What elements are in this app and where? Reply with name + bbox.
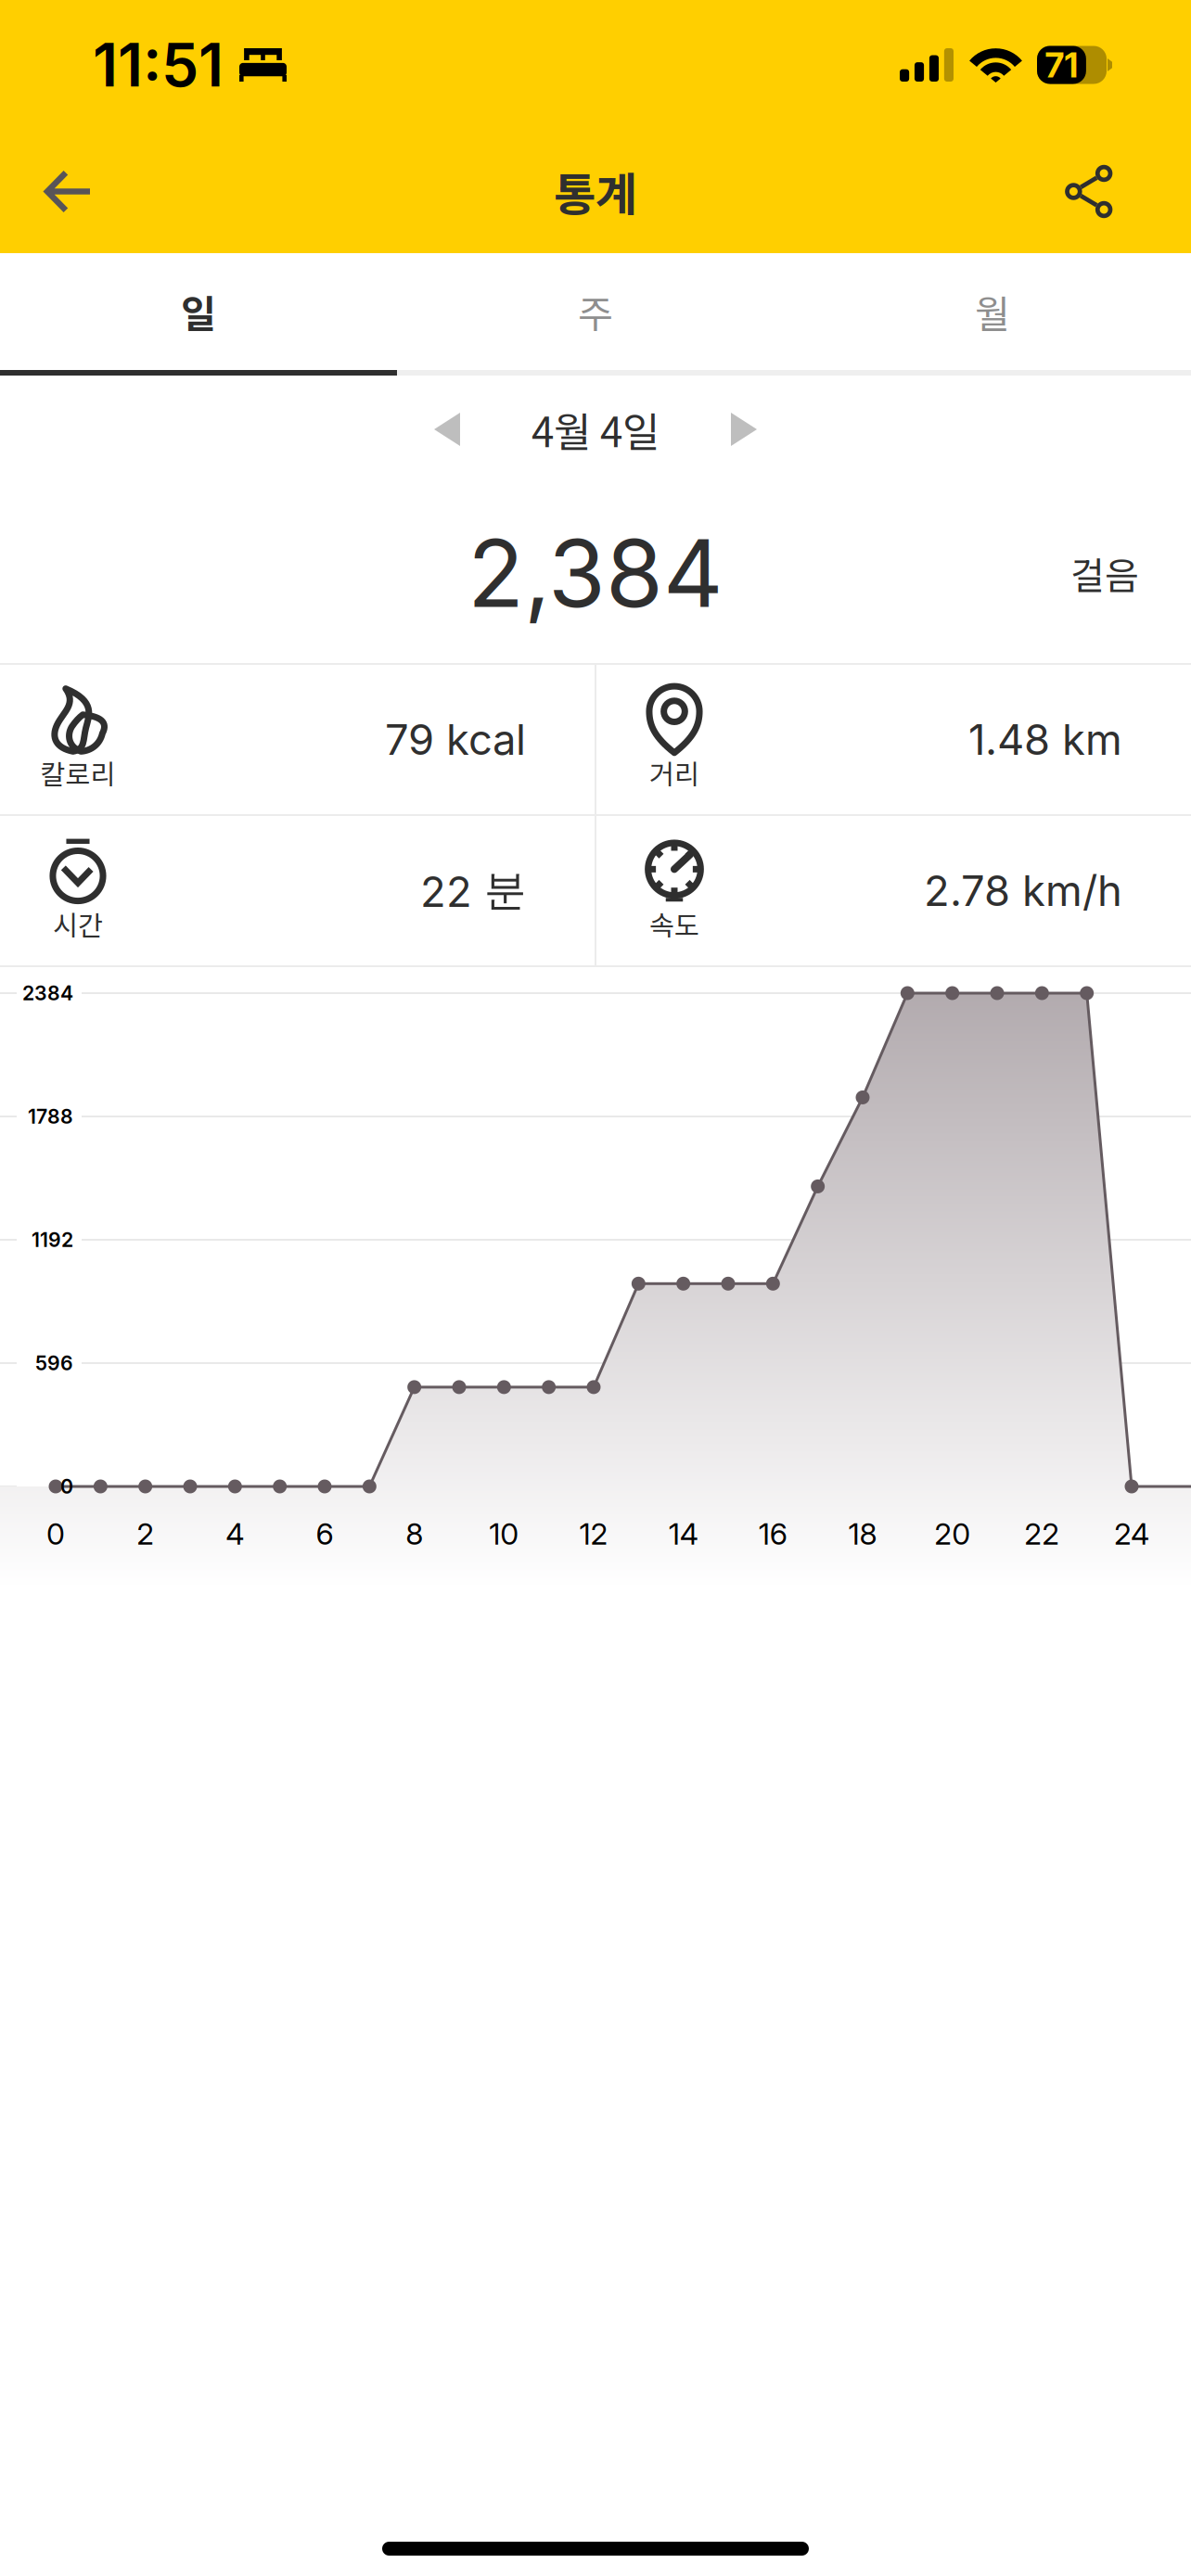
staticText: 0 xyxy=(46,1516,65,1552)
button[interactable]: Next day xyxy=(707,396,781,463)
staticText: 시간 xyxy=(53,904,103,944)
staticText: 16 xyxy=(759,1516,787,1552)
staticText: 18 xyxy=(848,1516,877,1552)
staticText: 596 xyxy=(35,1351,73,1375)
button[interactable]: Share xyxy=(1040,143,1140,240)
staticText: 1788 xyxy=(28,1104,73,1128)
staticText: 주 xyxy=(578,284,613,339)
staticText: 22 xyxy=(1024,1516,1060,1552)
staticText: 월 xyxy=(975,284,1010,339)
button[interactable]: Back xyxy=(22,143,115,240)
button[interactable]: 월 xyxy=(794,253,1191,370)
staticText: 2,384 xyxy=(467,517,724,629)
staticText: 8 xyxy=(406,1516,423,1552)
staticText: 20 xyxy=(934,1516,970,1552)
staticText: 2384 xyxy=(22,981,73,1005)
staticText: 2.78 km/h xyxy=(924,865,1122,916)
staticText: 24 xyxy=(1114,1516,1149,1552)
staticText: 걸음 xyxy=(1070,546,1139,600)
staticText: 칼로리 xyxy=(40,753,115,792)
staticText: 1192 xyxy=(32,1228,73,1252)
staticText: 71 xyxy=(1045,44,1078,86)
staticText: 12 xyxy=(579,1516,608,1552)
staticText: 2 xyxy=(137,1516,154,1552)
staticText: 79 kcal xyxy=(385,714,526,765)
staticText: 10 xyxy=(489,1516,519,1552)
staticText: 일 xyxy=(181,284,216,339)
button[interactable]: 주 xyxy=(397,253,794,370)
staticText: 11:51 xyxy=(93,29,224,101)
staticText: 4월 4일 xyxy=(531,400,660,459)
staticText: 거리 xyxy=(649,753,699,792)
button[interactable]: 일 xyxy=(0,253,397,370)
staticText: 1.48 km xyxy=(968,714,1122,765)
button[interactable]: Previous day xyxy=(410,396,484,463)
staticText: 14 xyxy=(668,1516,698,1552)
staticText: 통계 xyxy=(554,158,637,225)
staticText: 6 xyxy=(316,1516,333,1552)
staticText: 0 xyxy=(60,1474,73,1498)
staticText: 4 xyxy=(226,1516,244,1552)
staticText: 22 분 xyxy=(420,864,526,917)
staticText: 속도 xyxy=(649,904,699,944)
